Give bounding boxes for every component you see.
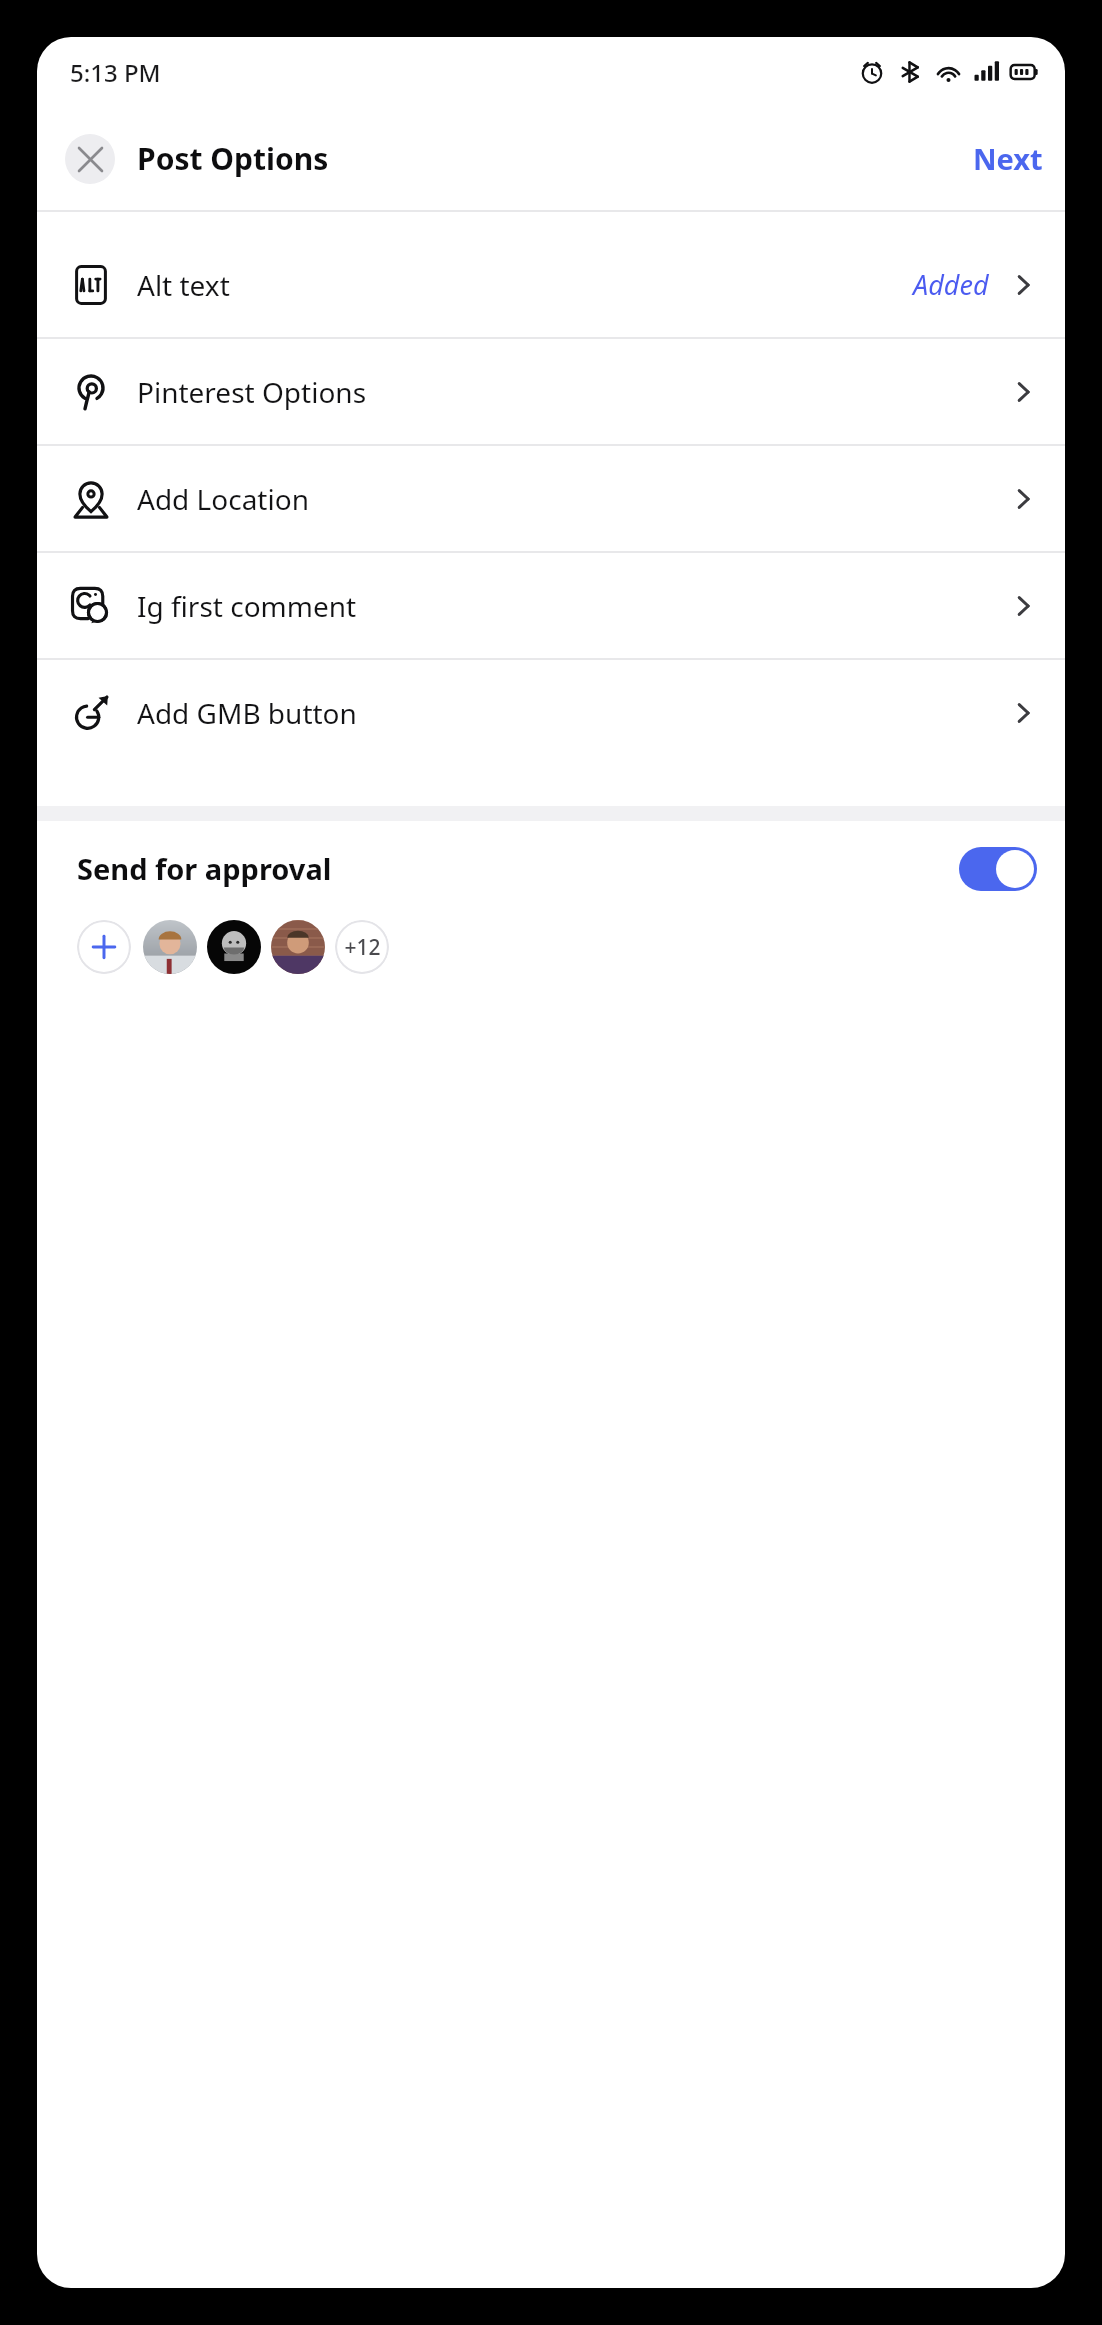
button[interactable]: Send for approval toggle [959,847,1037,891]
button[interactable] [143,920,197,974]
button[interactable]: Add Location [37,446,1065,551]
button[interactable] [207,920,261,974]
staticText: Add GMB button [137,694,357,732]
button[interactable]: Pinterest Options [37,339,1065,444]
staticText: Add Location [137,480,309,518]
staticText: Pinterest Options [137,373,367,411]
staticText: Next [973,139,1043,178]
staticText: 5:13 PM [70,56,161,89]
button[interactable]: Alt text [37,232,1065,337]
button[interactable]: Add GMB button [37,660,1065,765]
button[interactable]: +12 [335,920,389,974]
button[interactable]: Next [951,127,1065,190]
staticText: Send for approval [77,849,332,888]
staticText: Ig first comment [137,587,357,625]
staticText: Added [913,266,989,303]
staticText: +12 [344,933,381,962]
button[interactable]: Ig first comment [37,553,1065,658]
button[interactable]: Add approver [77,920,131,974]
button[interactable] [271,920,325,974]
button[interactable]: Close [65,134,115,184]
staticText: Alt text [137,266,230,304]
staticText: Post Options [137,138,329,179]
